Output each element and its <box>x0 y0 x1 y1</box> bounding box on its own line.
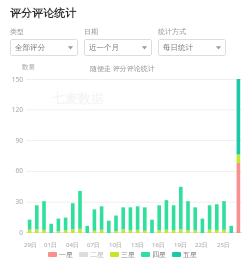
button[interactable]: 二星 <box>76 248 107 261</box>
staticText: 每日统计 <box>163 43 215 52</box>
staticText: 10日 <box>109 241 122 249</box>
button[interactable]: 一星 <box>45 248 76 261</box>
staticText: 七麦数据 <box>52 90 104 106</box>
staticText: 120 <box>11 105 23 114</box>
staticText: 一星 <box>59 250 73 259</box>
staticText: 日期 <box>84 27 98 36</box>
staticText: 二星 <box>90 250 104 259</box>
staticText: 四星 <box>152 250 166 259</box>
staticText: 评分评论统计 <box>10 6 76 20</box>
staticText: 数量 <box>22 63 35 71</box>
staticText: 近一个月 <box>89 43 141 52</box>
staticText: 29日 <box>24 241 37 249</box>
button[interactable]: 每日统计 <box>158 39 226 56</box>
button[interactable]: 五星 <box>169 248 200 261</box>
staticText: 01日 <box>44 241 57 249</box>
staticText: 13日 <box>131 241 144 249</box>
staticText: 全部评分 <box>15 43 67 52</box>
staticText: 90 <box>15 136 23 145</box>
staticText: 22日 <box>195 241 208 249</box>
button[interactable]: 近一个月 <box>84 39 152 56</box>
staticText: 30 <box>15 197 23 206</box>
staticText: 类型 <box>10 27 24 36</box>
button[interactable]: 全部评分 <box>10 39 78 56</box>
staticText: 25日 <box>217 241 230 249</box>
button[interactable]: 三星 <box>107 248 138 261</box>
staticText: 三星 <box>121 250 135 259</box>
staticText: 0 <box>19 228 23 237</box>
staticText: 19日 <box>174 241 187 249</box>
staticText: 04日 <box>66 241 79 249</box>
staticText: 60 <box>15 166 23 175</box>
staticText: 随便走 评分评论统计 <box>90 64 155 74</box>
staticText: 07日 <box>87 241 100 249</box>
staticText: 五星 <box>183 250 197 259</box>
staticText: 150 <box>11 75 23 84</box>
button[interactable]: 四星 <box>138 248 169 261</box>
staticText: 16日 <box>152 241 165 249</box>
staticText: 统计方式 <box>158 27 186 36</box>
